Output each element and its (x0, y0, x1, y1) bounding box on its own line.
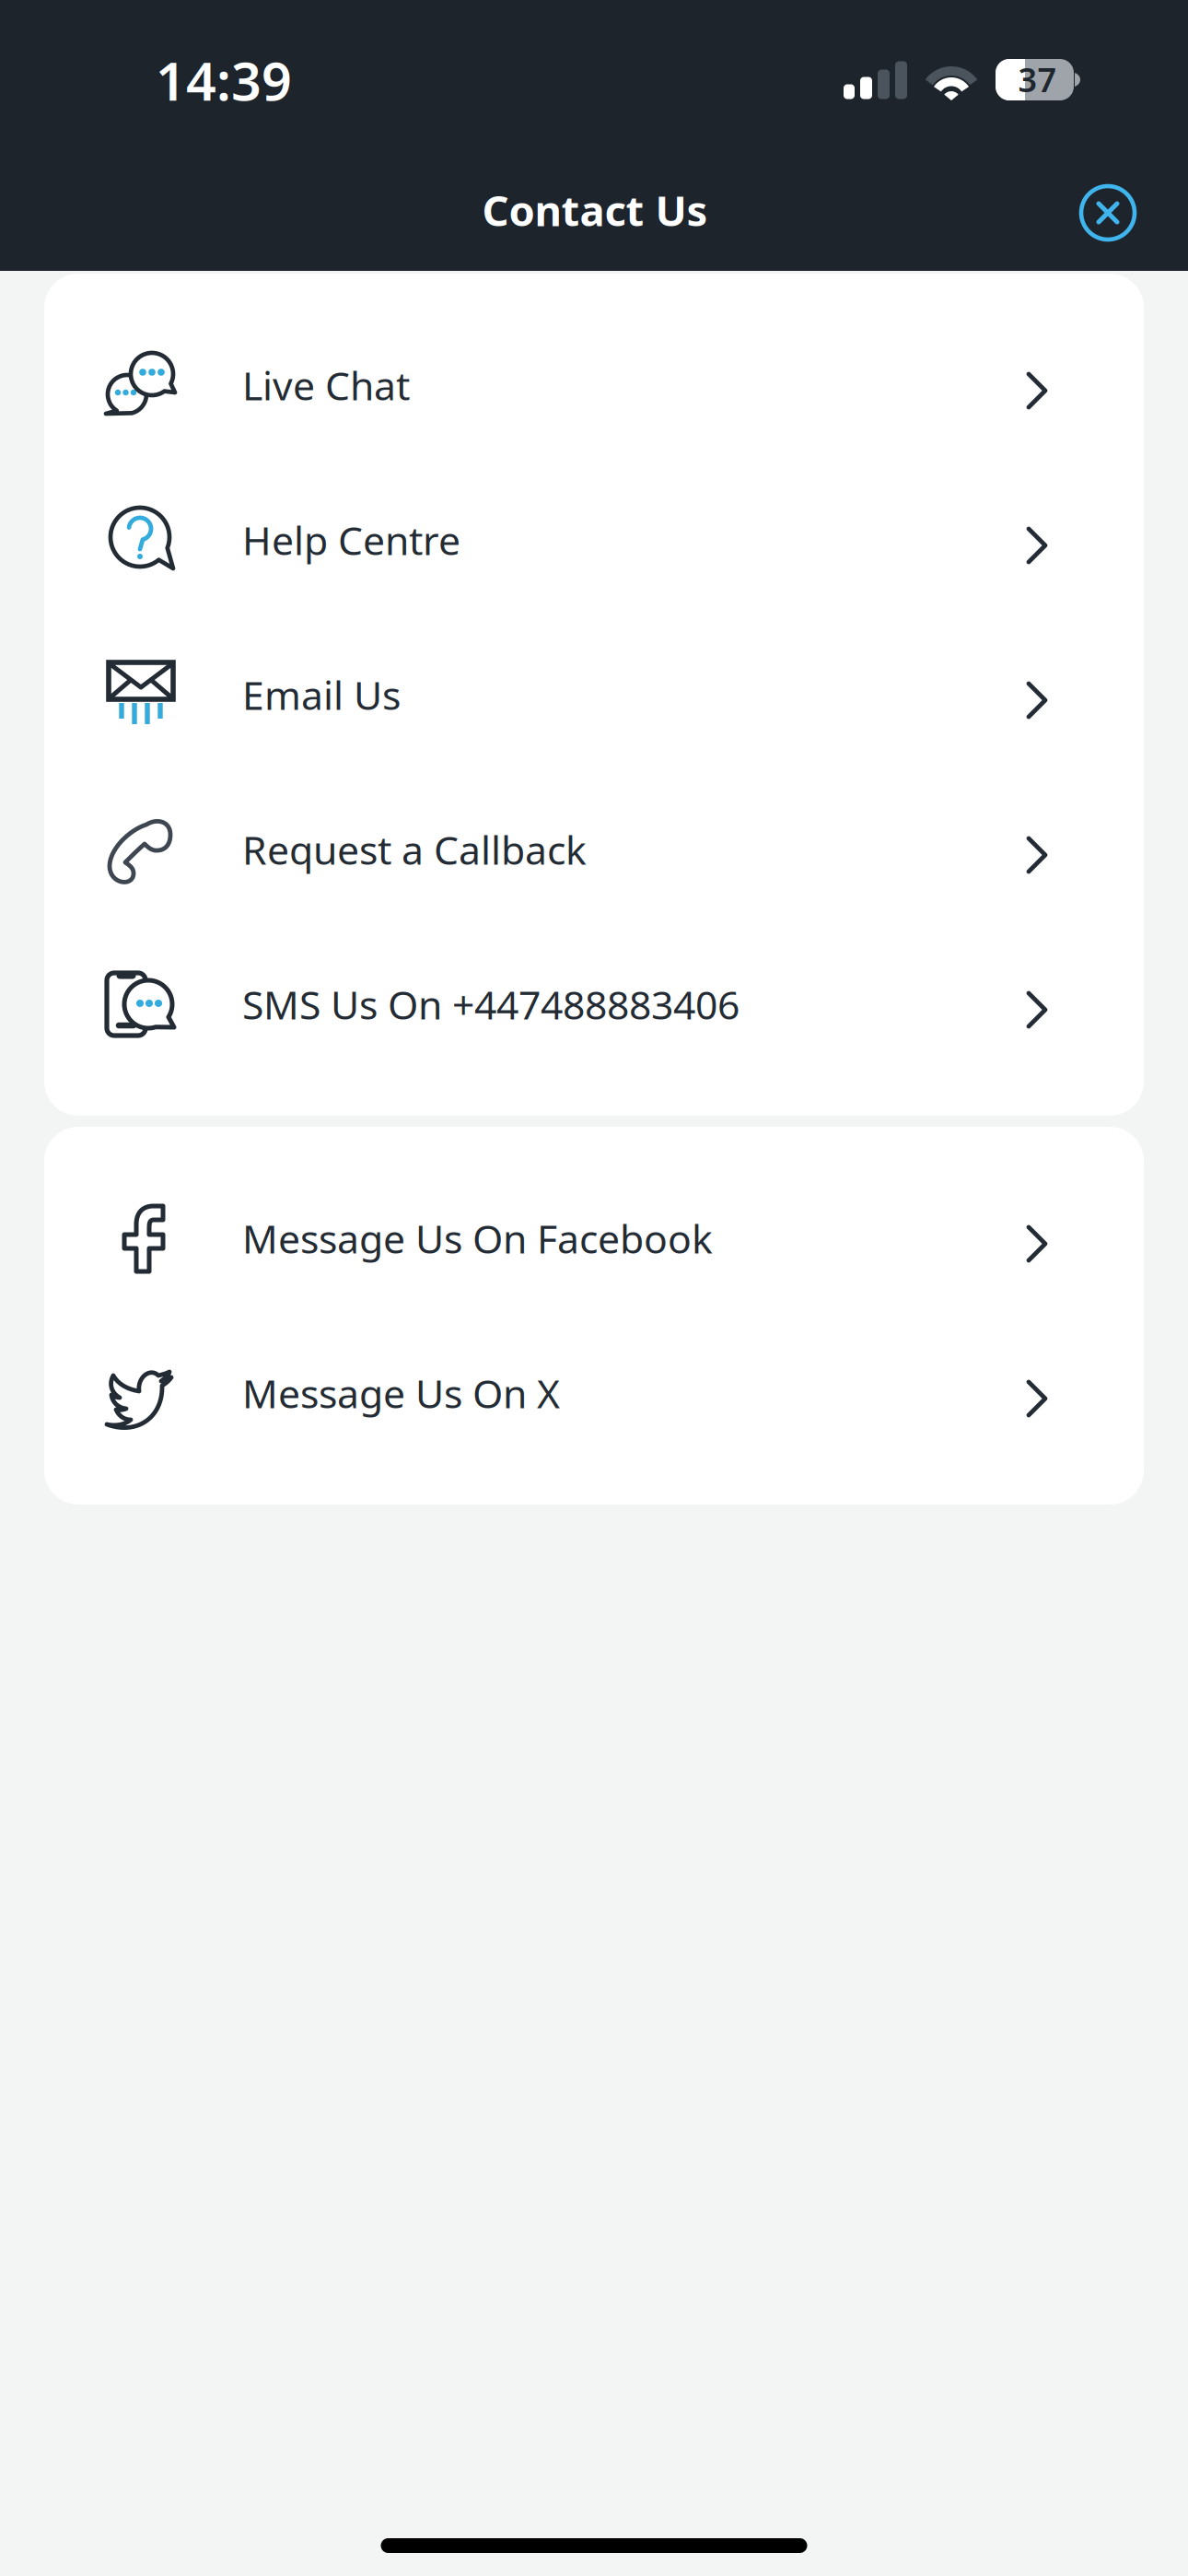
staticText: 37 (1018, 57, 1057, 101)
button[interactable]: Email Us (44, 617, 1144, 772)
staticText: Message Us On Facebook (242, 1212, 713, 1264)
staticText: Message Us On X (242, 1367, 560, 1419)
staticText: SMS Us On +447488883406 (242, 978, 740, 1030)
button[interactable]: Close (1056, 161, 1159, 264)
staticText: Email Us (242, 669, 401, 721)
button[interactable]: Live Chat (44, 308, 1144, 463)
staticText: Help Centre (242, 514, 460, 566)
button[interactable]: Request a Callback (44, 772, 1144, 927)
staticText: 14:39 (156, 45, 292, 115)
button[interactable]: Message Us On X (44, 1316, 1144, 1470)
button[interactable]: SMS Us On +447488883406 (44, 927, 1144, 1082)
button[interactable]: Help Centre (44, 463, 1144, 617)
button[interactable]: Message Us On Facebook (44, 1161, 1144, 1316)
staticText: Contact Us (482, 182, 708, 238)
staticText: Live Chat (242, 359, 410, 411)
staticText: Request a Callback (242, 823, 587, 876)
